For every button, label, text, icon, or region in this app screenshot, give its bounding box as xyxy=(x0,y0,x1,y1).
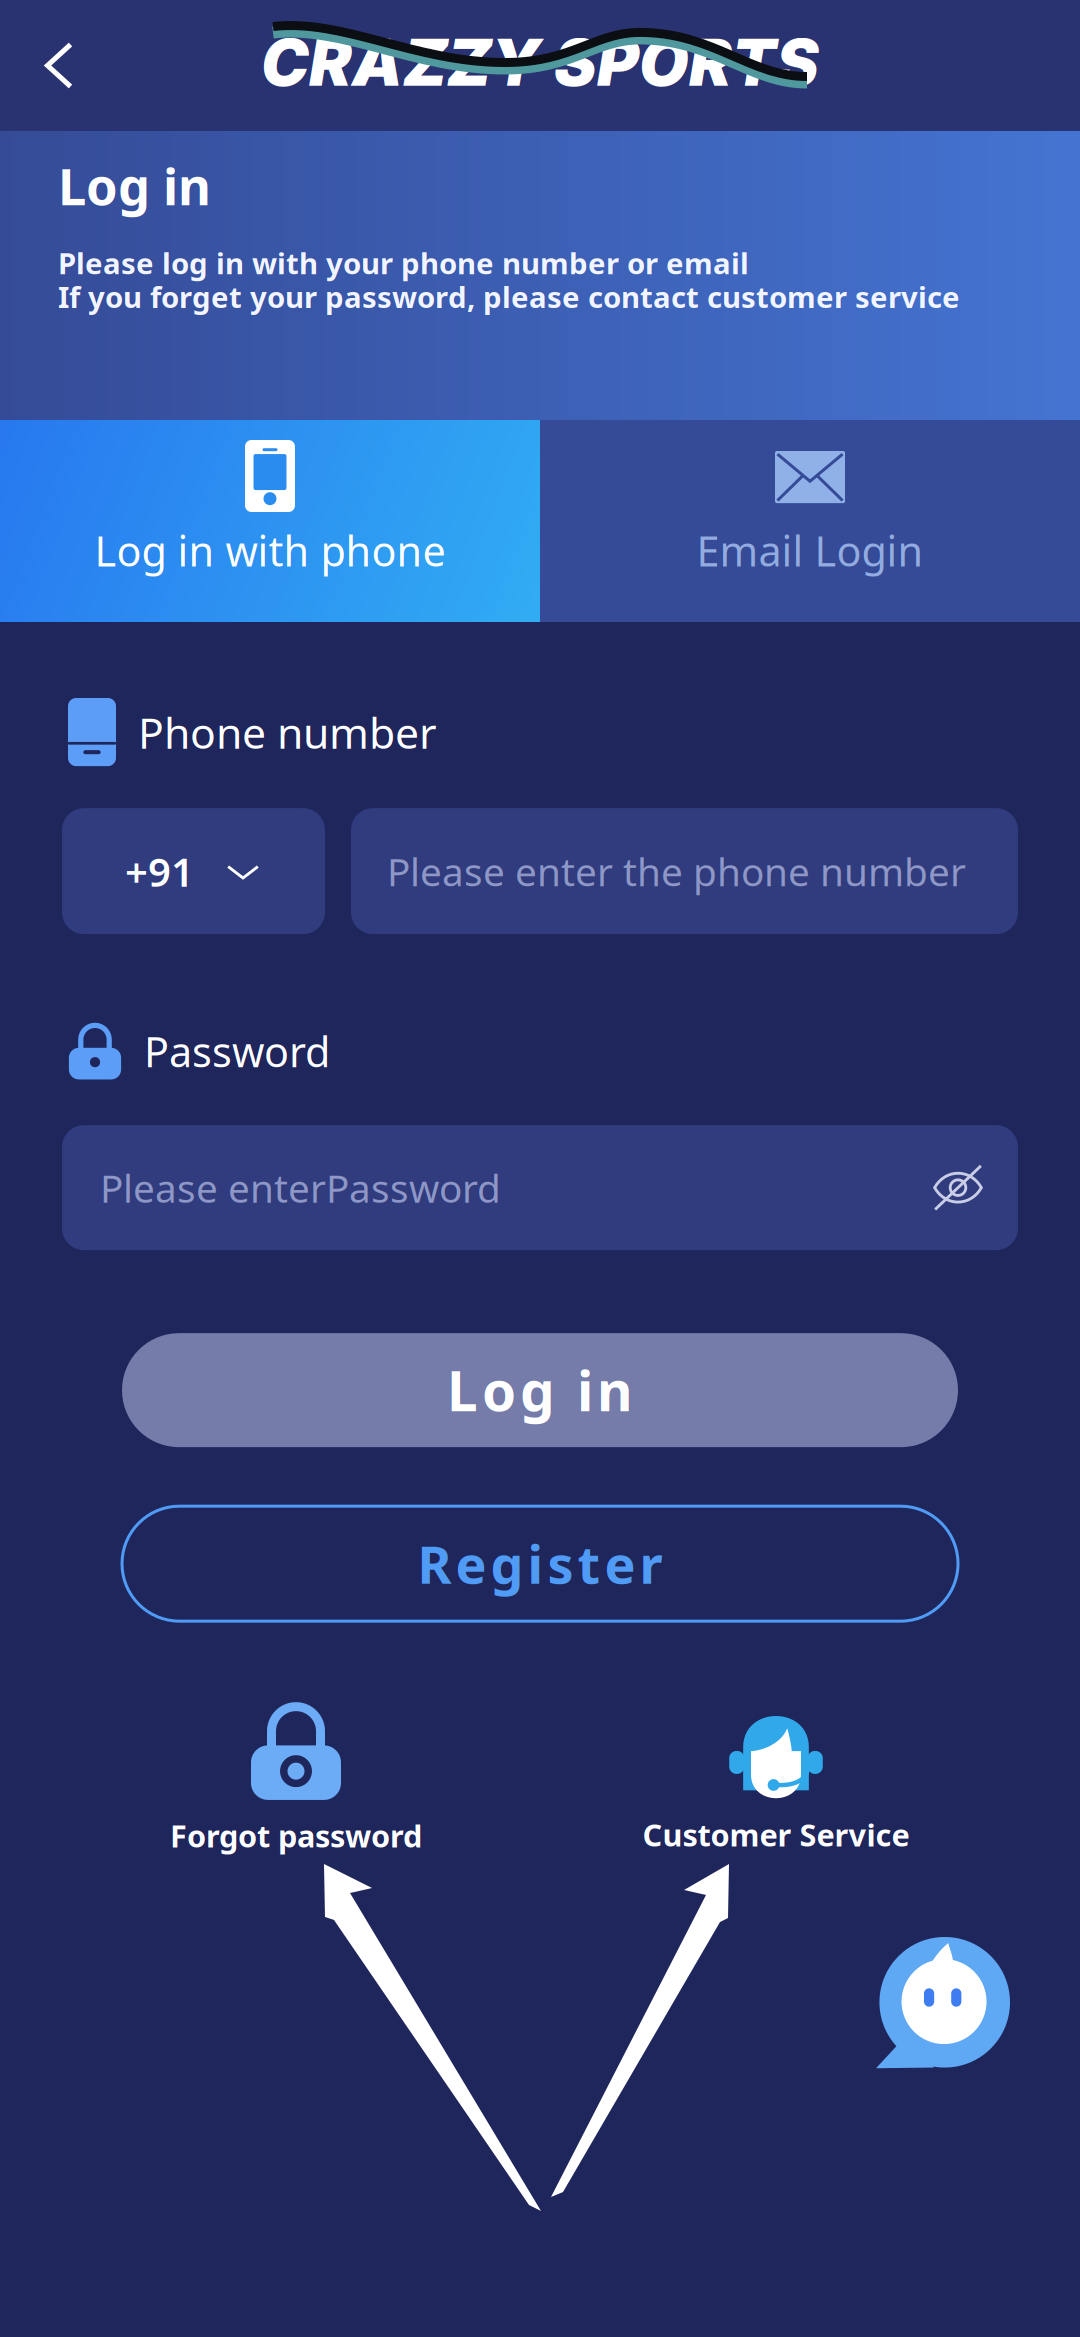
button[interactable]: Register xyxy=(122,1506,958,1621)
staticText: +91 xyxy=(125,845,194,898)
button[interactable]: Show password xyxy=(932,1162,1018,1214)
button[interactable]: Log in xyxy=(122,1333,958,1447)
staticText: CRAZZY SPORTS xyxy=(261,24,819,101)
staticText: Password xyxy=(144,1024,330,1079)
staticText: Forgot password xyxy=(170,1815,422,1856)
button[interactable]: Chat support xyxy=(874,1937,1010,2073)
button[interactable]: Back xyxy=(0,0,118,131)
staticText: Please log in with your phone number or … xyxy=(58,243,749,282)
button[interactable]: Email Login xyxy=(540,420,1080,622)
staticText: Please enter the phone number xyxy=(387,845,966,897)
staticText: Customer Service xyxy=(642,1814,909,1855)
button[interactable]: Forgot password xyxy=(116,1701,476,1856)
staticText: Email Login xyxy=(696,523,923,578)
staticText: Log in xyxy=(447,1354,633,1426)
button[interactable]: Customer Service xyxy=(596,1702,956,1855)
staticText: Phone number xyxy=(138,704,437,760)
button[interactable]: Log in with phone xyxy=(0,420,540,622)
staticText: Log in with phone xyxy=(94,523,445,578)
staticText: Log in xyxy=(58,152,211,219)
staticText: Register xyxy=(417,1529,662,1598)
button[interactable]: +91 xyxy=(62,808,325,934)
staticText: Please enterPassword xyxy=(100,1162,501,1213)
staticText: If you forget your password, please cont… xyxy=(58,277,960,316)
